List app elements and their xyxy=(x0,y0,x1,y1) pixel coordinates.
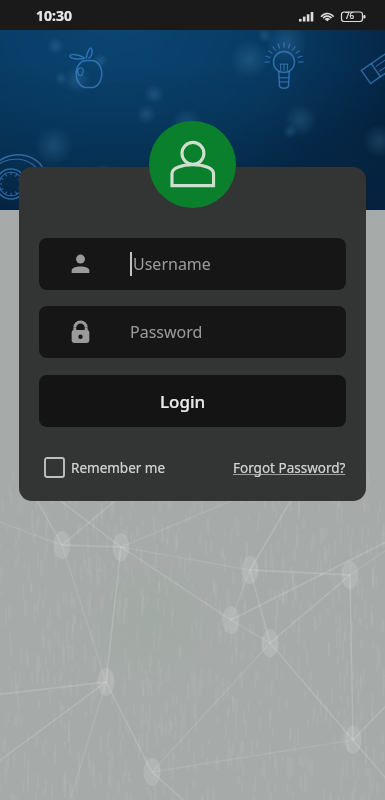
button[interactable]: Remember me xyxy=(45,458,166,477)
staticText: Login xyxy=(160,390,206,413)
staticText: Password xyxy=(130,321,203,343)
staticText: Remember me xyxy=(71,459,166,477)
staticText: 76 xyxy=(345,10,355,21)
staticText: 10:30 xyxy=(36,6,72,25)
button[interactable]: Forgot Password? xyxy=(233,459,346,477)
staticText: Forgot Password? xyxy=(233,459,346,477)
button[interactable]: Username xyxy=(39,238,346,290)
staticText: Username xyxy=(133,253,211,275)
button[interactable]: Password xyxy=(39,306,346,358)
button[interactable]: Login xyxy=(39,375,346,427)
